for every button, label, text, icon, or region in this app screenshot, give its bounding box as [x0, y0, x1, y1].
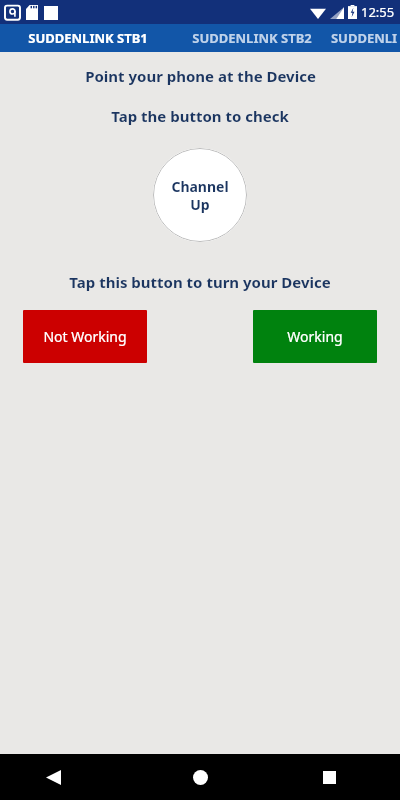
button[interactable]: Home [145, 754, 255, 800]
staticText: Tap the button to check [111, 106, 289, 126]
staticText: SUDDENLINK STB2 [192, 29, 312, 47]
button[interactable]: Recent apps [255, 754, 400, 800]
button[interactable]: SUDDENLINK STB2 [176, 24, 328, 52]
staticText: 12:55 [361, 3, 395, 21]
button[interactable]: Back [0, 754, 145, 800]
button[interactable]: SUDDENLINK STB3 [328, 24, 400, 52]
staticText: Not Working [43, 327, 127, 346]
staticText: Point your phone at the Device [85, 66, 316, 86]
button[interactable]: Not Working [23, 310, 147, 363]
staticText: Working [287, 327, 343, 346]
button[interactable]: SUDDENLINK STB1 [0, 24, 176, 52]
staticText: SUDDENLINK STB1 [28, 29, 148, 47]
staticText: Channel Up [171, 177, 229, 214]
button[interactable]: Working [253, 310, 377, 363]
button[interactable]: Channel Up [153, 148, 247, 242]
staticText: SUDDENLINK STB3 [328, 29, 400, 47]
staticText: Tap this button to turn your Device [69, 272, 331, 292]
